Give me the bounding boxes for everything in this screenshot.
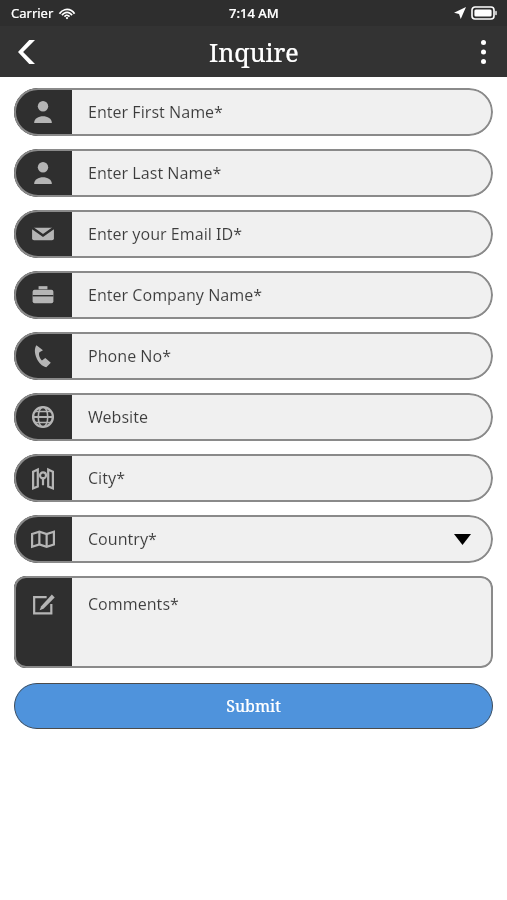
button[interactable]: City*: [14, 454, 493, 502]
button[interactable]: More options: [459, 28, 507, 76]
staticText: City*: [88, 467, 125, 489]
button[interactable]: Enter First Name*: [14, 88, 493, 136]
button[interactable]: Submit: [14, 683, 493, 729]
staticText: Carrier: [11, 4, 54, 22]
staticText: Country*: [88, 528, 157, 550]
button[interactable]: Enter your Email ID*: [14, 210, 493, 258]
staticText: Enter your Email ID*: [88, 223, 243, 245]
button[interactable]: Comments*: [14, 576, 493, 668]
button[interactable]: Website: [14, 393, 493, 441]
button[interactable]: Enter Last Name*: [14, 149, 493, 197]
staticText: Comments*: [88, 593, 179, 615]
button[interactable]: Back: [0, 26, 52, 77]
staticText: Enter Company Name*: [88, 284, 263, 306]
staticText: Inquire: [209, 35, 299, 69]
button[interactable]: Enter Company Name*: [14, 271, 493, 319]
staticText: Website: [88, 406, 149, 428]
button[interactable]: Country*: [14, 515, 493, 563]
staticText: Enter Last Name*: [88, 162, 222, 184]
staticText: Enter First Name*: [88, 101, 223, 123]
staticText: 7:14 AM: [229, 4, 279, 22]
button[interactable]: Phone No*: [14, 332, 493, 380]
staticText: Phone No*: [88, 345, 171, 367]
staticText: Submit: [226, 695, 281, 717]
